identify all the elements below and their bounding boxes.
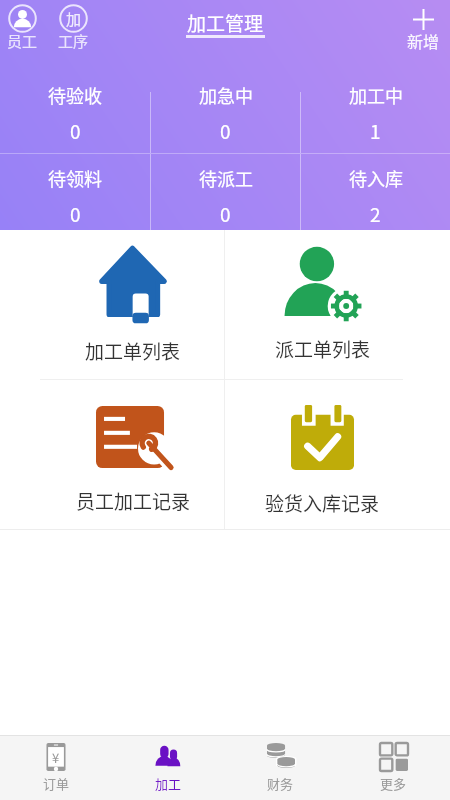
staticText: 派工单列表: [275, 335, 371, 363]
staticText: 0: [220, 117, 231, 145]
other: 加工: [154, 743, 182, 771]
staticText: 财务: [267, 774, 294, 793]
staticText: 员工加工记录: [76, 487, 191, 515]
staticText: 0: [70, 117, 81, 145]
other: 新增: [413, 9, 434, 30]
staticText: 1: [370, 117, 381, 145]
staticText: 工序: [58, 30, 89, 52]
button[interactable]: 更多: [337, 736, 450, 800]
staticText: 新增: [407, 29, 440, 52]
other: 员工: [8, 4, 37, 33]
staticText: 加工单列表: [85, 337, 181, 365]
staticText: 待入库: [349, 165, 403, 191]
staticText: 待派工: [199, 165, 253, 191]
staticText: 加急中: [199, 82, 253, 108]
staticText: ¥: [52, 748, 60, 767]
staticText: 加工中: [349, 82, 403, 108]
staticText: 加工: [155, 774, 182, 793]
staticText: 待领料: [48, 165, 102, 191]
staticText: 0: [70, 200, 81, 228]
staticText: 更多: [380, 774, 407, 793]
button[interactable]: 订单: [0, 736, 112, 800]
button[interactable]: 待入库: [301, 154, 450, 230]
other: 财务: [267, 743, 295, 771]
staticText: 2: [370, 200, 381, 228]
button[interactable]: 加急中: [151, 74, 300, 153]
button[interactable]: 工序: [48, 0, 97, 57]
button[interactable]: 员工: [0, 0, 48, 57]
button[interactable]: 新增: [395, 0, 450, 57]
staticText: 加工管理: [187, 9, 264, 37]
staticText: 员工: [7, 30, 38, 52]
staticText: 订单: [43, 774, 70, 793]
staticText: 验货入库记录: [265, 489, 380, 517]
button[interactable]: 财务: [224, 736, 337, 800]
button[interactable]: 加工单列表: [0, 230, 224, 379]
staticText: 加: [66, 8, 82, 30]
button[interactable]: 员工加工记录: [0, 380, 224, 529]
staticText: 待验收: [48, 82, 102, 108]
other: 更多: [380, 743, 408, 771]
button[interactable]: 待领料: [0, 154, 150, 230]
other: 工序: [59, 4, 88, 33]
button[interactable]: 派工单列表: [225, 230, 450, 379]
button[interactable]: 加工: [112, 736, 224, 800]
other: 订单: [42, 743, 70, 771]
button[interactable]: 待派工: [151, 154, 300, 230]
button[interactable]: 验货入库记录: [225, 380, 450, 529]
button[interactable]: 待验收: [0, 74, 150, 153]
staticText: 0: [220, 200, 231, 228]
button[interactable]: 加工中: [301, 74, 450, 153]
